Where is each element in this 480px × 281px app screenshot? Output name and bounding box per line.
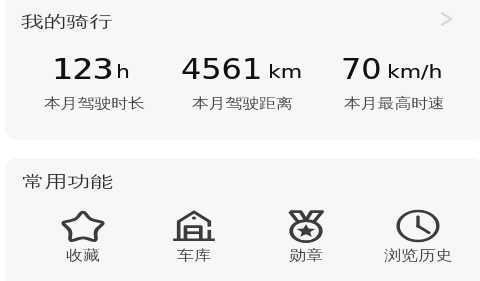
staticText: 浏览历史 [384, 247, 452, 265]
button[interactable] [5, 0, 480, 140]
staticText: 本月驾驶时长 [44, 95, 145, 113]
staticText: h [116, 61, 131, 82]
staticText: 勋章 [289, 247, 323, 265]
staticText: 我的骑行 [21, 11, 112, 31]
staticText: 70 [341, 52, 382, 86]
staticText: 70 [341, 52, 382, 86]
staticText: 常用功能 [22, 171, 113, 191]
staticText: 本月驾驶距离 [192, 95, 293, 113]
staticText: 本月最高时速 [344, 95, 445, 113]
button[interactable]: 车库 [164, 204, 224, 266]
staticText: 123 [52, 52, 114, 86]
button[interactable]: 勋章 [276, 204, 336, 266]
staticText: 4561 [181, 52, 262, 86]
staticText: 123 [53, 52, 115, 86]
staticText: 收藏 [66, 247, 100, 265]
staticText: km [268, 61, 302, 82]
button[interactable]: 浏览历史 [388, 204, 448, 266]
staticText: km/h [387, 61, 443, 82]
staticText: h [116, 61, 131, 82]
staticText: km [268, 61, 302, 82]
button[interactable]: More [436, 8, 458, 30]
staticText: 车库 [177, 247, 211, 265]
staticText: 4561 [181, 52, 262, 86]
button[interactable]: 收藏 [53, 204, 113, 266]
staticText: km/h [387, 61, 443, 82]
